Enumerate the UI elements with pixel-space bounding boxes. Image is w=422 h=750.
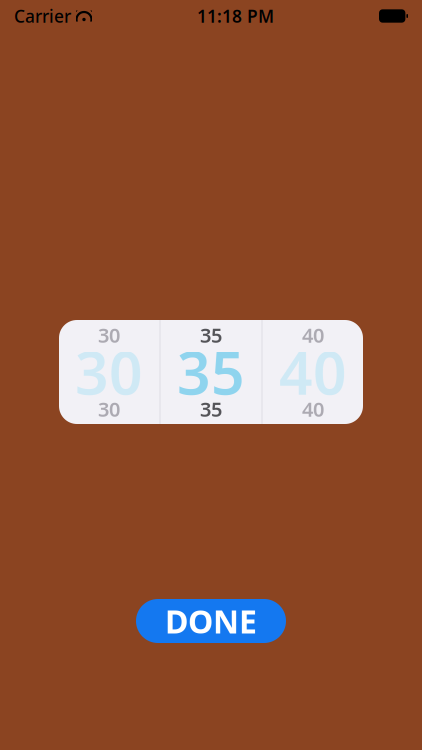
staticText: 35 — [200, 322, 222, 348]
staticText: Carrier — [14, 4, 71, 27]
staticText: 11:18 PM — [197, 4, 274, 27]
staticText: 40 — [302, 396, 324, 422]
button[interactable]: DONE — [136, 599, 286, 643]
staticText: 40 — [279, 333, 347, 411]
staticText: 30 — [98, 396, 120, 422]
staticText: 30 — [98, 322, 120, 348]
staticText: DONE — [165, 600, 257, 642]
button[interactable]: 40 — [262, 320, 363, 424]
button[interactable]: 35 — [160, 320, 261, 424]
staticText: 40 — [302, 322, 324, 348]
staticText: 35 — [200, 396, 222, 422]
button[interactable]: 30 — [58, 320, 159, 424]
staticText: 35 — [177, 333, 245, 411]
staticText: 30 — [75, 333, 143, 411]
